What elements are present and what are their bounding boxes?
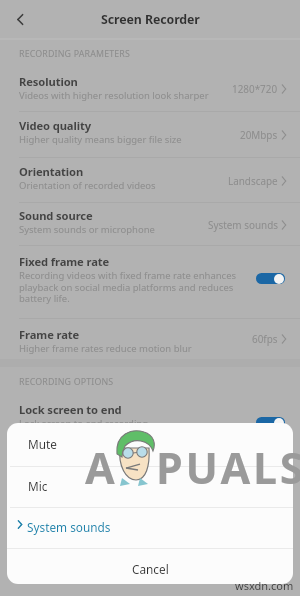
button[interactable]: Mic: [7, 466, 293, 507]
button[interactable]: Sound source: [0, 203, 300, 245]
staticText: System sounds or microphone: [19, 223, 155, 236]
staticText: System sounds: [208, 218, 278, 231]
staticText: Frame rate: [19, 327, 80, 342]
staticText: wsxdn.com: [235, 578, 294, 593]
staticText: RECORDING OPTIONS: [19, 376, 114, 388]
button[interactable]: Mute: [7, 423, 293, 466]
staticText: Recording videos with fixed frame rate e…: [19, 269, 237, 305]
staticText: Resolution: [19, 74, 78, 89]
staticText: Lock screen to end recording: [19, 417, 149, 430]
staticText: RECORDING PARAMETERS: [19, 48, 130, 60]
button[interactable]: Orientation: [0, 158, 300, 202]
staticText: Higher frame rates reduce motion blur: [19, 342, 192, 355]
staticText: Videos with higher resolution look sharp…: [19, 89, 209, 102]
staticText: System sounds: [27, 519, 111, 535]
staticText: Fixed frame rate: [19, 254, 110, 269]
button[interactable]: System sounds: [7, 507, 293, 548]
staticText: Mute: [28, 436, 57, 452]
staticText: Orientation of recorded videos: [19, 179, 156, 192]
button[interactable]: Lock screen to end: [0, 394, 300, 439]
staticText: Higher quality means bigger file size: [19, 133, 182, 146]
button[interactable]: Toggle setting: [256, 417, 285, 428]
staticText: Screen Recorder: [101, 11, 200, 28]
staticText: 1280*720: [232, 82, 278, 95]
staticText: Cancel: [132, 561, 169, 577]
staticText: A: [85, 438, 115, 497]
staticText: PUALS: [156, 438, 300, 497]
button[interactable]: Cancel: [7, 548, 293, 584]
button[interactable]: Fixed frame rate: [0, 246, 300, 318]
button[interactable]: Toggle setting: [256, 273, 285, 284]
button[interactable]: Resolution: [0, 66, 300, 111]
button[interactable]: Back: [8, 7, 32, 31]
button[interactable]: Video quality: [0, 112, 300, 156]
button[interactable]: Frame rate: [0, 319, 300, 358]
staticText: Mic: [28, 478, 48, 494]
staticText: 20Mbps: [240, 128, 278, 141]
staticText: Video quality: [19, 118, 91, 133]
staticText: Landscape: [228, 174, 278, 187]
staticText: 60fps: [252, 332, 278, 345]
staticText: Lock screen to end: [19, 402, 122, 417]
staticText: Orientation: [19, 164, 84, 179]
staticText: Sound source: [19, 208, 93, 223]
